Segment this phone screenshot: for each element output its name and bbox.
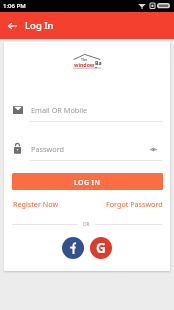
staticText: LOG IN <box>74 178 101 188</box>
staticText: G <box>96 239 106 257</box>
button[interactable]: Register Now <box>13 199 59 209</box>
button[interactable]: Show password <box>148 144 158 154</box>
staticText: window <box>74 61 95 68</box>
button[interactable]: LOG IN <box>12 173 163 190</box>
staticText: Password <box>31 144 65 154</box>
staticText: 1:06 PM <box>3 2 26 10</box>
button[interactable]: Forgot Password <box>106 199 163 209</box>
button[interactable]: Back <box>6 19 19 32</box>
staticText: Bar <box>95 54 102 68</box>
button[interactable]: Sign in with Google <box>90 237 112 259</box>
staticText: OR <box>83 221 90 227</box>
button[interactable]: Sign in with Facebook <box>62 237 84 259</box>
staticText: The <box>81 57 88 62</box>
staticText: Log In <box>25 19 54 32</box>
staticText: Email OR Mobile <box>31 105 88 115</box>
